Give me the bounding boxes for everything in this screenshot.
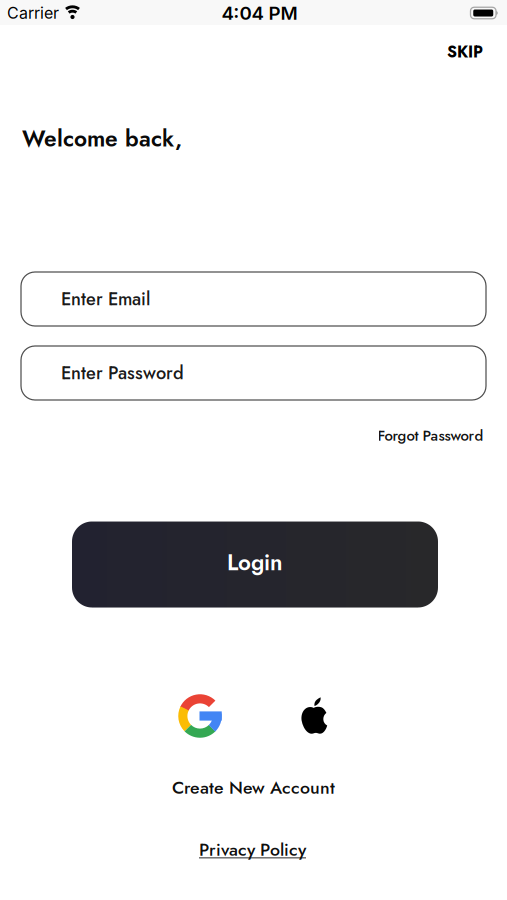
staticText: Enter Email bbox=[61, 286, 150, 312]
staticText: Welcome back, bbox=[22, 122, 182, 155]
button[interactable]: SKIP bbox=[423, 38, 483, 66]
staticText: Login bbox=[227, 546, 283, 579]
staticText: Enter Password bbox=[61, 360, 184, 386]
staticText: Create New Account bbox=[172, 775, 335, 800]
button[interactable] bbox=[178, 694, 222, 738]
button[interactable]: Enter Email bbox=[21, 272, 486, 326]
staticText: 4:04 PM bbox=[221, 2, 297, 24]
staticText: Privacy Policy bbox=[199, 837, 306, 862]
button[interactable]: Login bbox=[72, 521, 438, 607]
button[interactable]: Privacy Policy bbox=[199, 837, 306, 862]
staticText: SKIP bbox=[447, 40, 483, 63]
button[interactable] bbox=[300, 696, 328, 734]
staticText: Carrier bbox=[7, 3, 59, 23]
button[interactable]: Create New Account bbox=[172, 775, 335, 800]
button[interactable]: Enter Password bbox=[21, 346, 486, 400]
staticText: Forgot Password bbox=[377, 425, 483, 446]
button[interactable]: Forgot Password bbox=[23, 425, 483, 446]
